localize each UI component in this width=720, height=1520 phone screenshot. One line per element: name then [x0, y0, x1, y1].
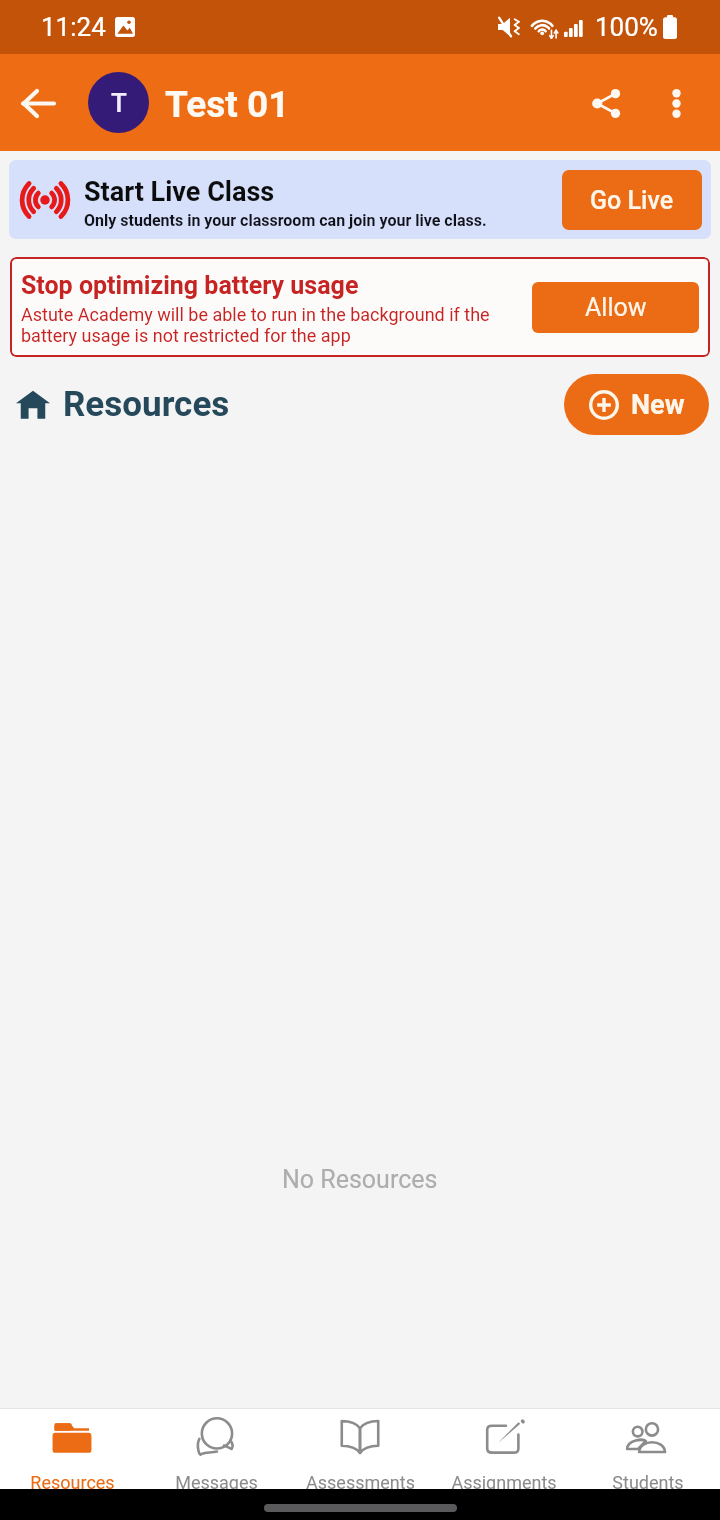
- button[interactable]: T: [88, 72, 149, 133]
- staticText: Only students in your classroom can join…: [84, 211, 487, 230]
- staticText: Test 01: [165, 83, 290, 126]
- button[interactable]: Stop optimizing battery usage: [10, 257, 710, 357]
- button[interactable]: Assignments: [432, 1409, 576, 1489]
- button[interactable]: New: [564, 374, 709, 435]
- staticText: New: [631, 389, 685, 421]
- button[interactable]: Messages: [144, 1409, 288, 1489]
- staticText: Go Live: [590, 186, 674, 215]
- staticText: 11:24: [41, 12, 106, 42]
- button[interactable]: Assessments: [288, 1409, 432, 1489]
- staticText: Messages: [175, 1472, 258, 1493]
- button[interactable]: Share: [577, 74, 635, 132]
- staticText: Resources: [30, 1472, 115, 1493]
- button[interactable]: More options: [647, 74, 705, 132]
- staticText: Start Live Class: [84, 176, 275, 208]
- staticText: T: [111, 88, 127, 118]
- staticText: Allow: [585, 293, 647, 322]
- staticText: Students: [612, 1472, 684, 1493]
- staticText: Astute Academy will be able to run in th…: [21, 304, 511, 347]
- button[interactable]: Back: [8, 73, 68, 133]
- button[interactable]: Go Live: [562, 170, 702, 230]
- staticText: Assessments: [306, 1472, 415, 1493]
- staticText: 100%: [595, 12, 658, 42]
- button[interactable]: Resources: [16, 384, 230, 425]
- button[interactable]: Allow: [532, 282, 699, 333]
- staticText: Assignments: [451, 1472, 557, 1493]
- button[interactable]: Resources: [0, 1409, 144, 1489]
- staticText: Stop optimizing battery usage: [21, 271, 359, 300]
- button[interactable]: Students: [576, 1409, 720, 1489]
- button[interactable]: Start Live Class: [9, 160, 711, 239]
- staticText: Resources: [63, 384, 230, 425]
- staticText: No Resources: [282, 1165, 438, 1194]
